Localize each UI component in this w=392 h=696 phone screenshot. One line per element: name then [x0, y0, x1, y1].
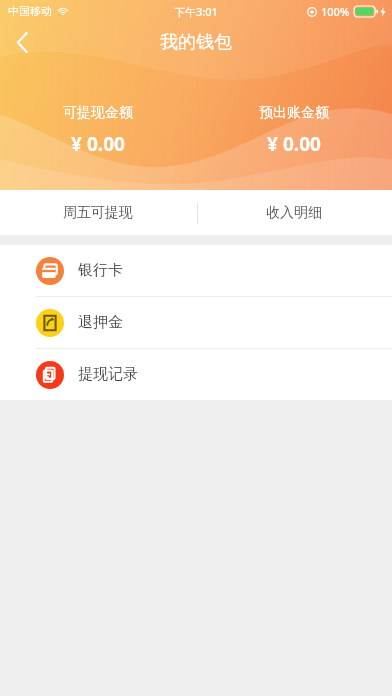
- staticText: 退押金: [78, 313, 123, 332]
- staticText: 预出账金额: [259, 104, 329, 122]
- staticText: ¥ 0.00: [71, 131, 125, 157]
- button[interactable]: 提现记录: [0, 349, 392, 400]
- staticText: 我的钱包: [160, 31, 232, 54]
- staticText: 提现记录: [78, 365, 138, 384]
- button[interactable]: 周五可提现: [0, 190, 196, 235]
- button[interactable]: Back: [0, 22, 44, 62]
- staticText: 可提现金额: [63, 104, 133, 122]
- staticText: 周五可提现: [63, 204, 133, 222]
- button[interactable]: 银行卡: [0, 245, 392, 296]
- staticText: 100%: [321, 4, 350, 19]
- staticText: 下午3:01: [174, 4, 218, 19]
- button[interactable]: 退押金: [0, 297, 392, 348]
- staticText: 银行卡: [78, 261, 123, 280]
- staticText: 中国移动: [8, 4, 52, 18]
- staticText: 收入明细: [266, 204, 322, 222]
- staticText: ¥ 0.00: [267, 131, 321, 157]
- button[interactable]: 收入明细: [196, 190, 392, 235]
